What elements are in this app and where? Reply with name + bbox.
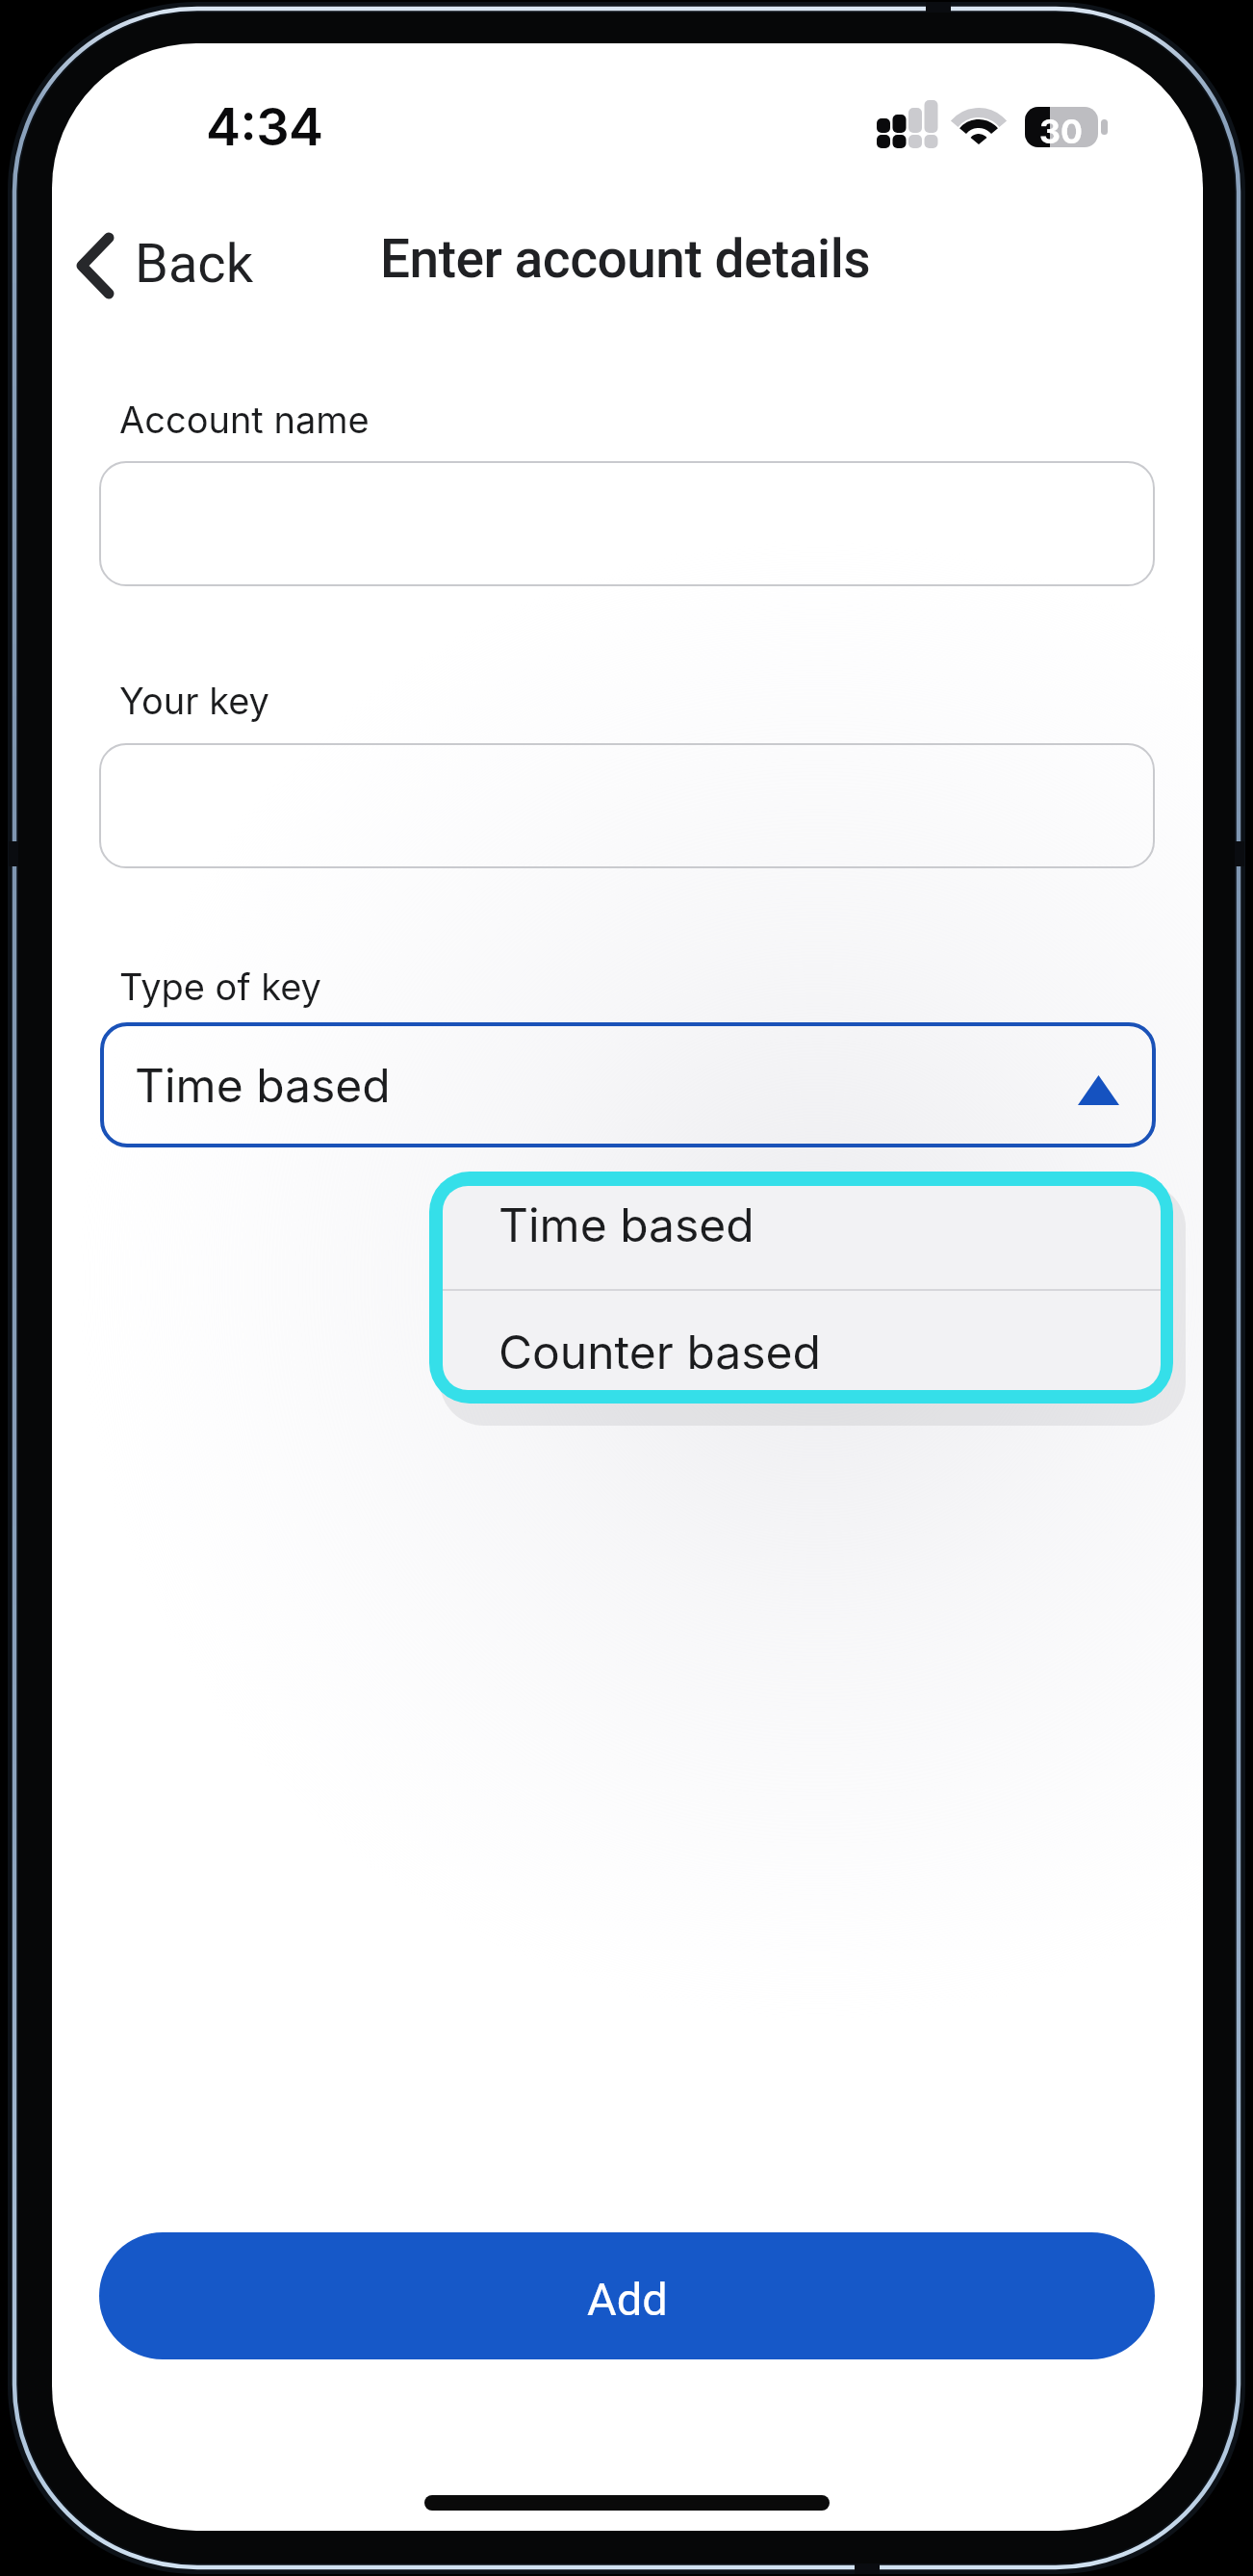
staticText: Enter account details <box>380 228 871 290</box>
staticText: 30 <box>1039 112 1083 151</box>
staticText: Counter based <box>499 1324 821 1379</box>
staticText: 4:34 <box>206 95 323 158</box>
button[interactable]: Back <box>67 212 318 347</box>
staticText: Time based <box>135 1057 391 1113</box>
staticText: Time based <box>499 1197 754 1252</box>
button[interactable]: Time based <box>100 1022 1156 1147</box>
staticText: Type of key <box>119 965 321 1009</box>
staticText: Account name <box>119 398 370 442</box>
button[interactable]: Time based <box>443 1186 1161 1289</box>
staticText: Your key <box>119 679 269 723</box>
button[interactable] <box>99 743 1155 868</box>
staticText: Add <box>587 2273 668 2326</box>
button[interactable] <box>99 461 1155 586</box>
button[interactable]: Counter based <box>443 1291 1161 1390</box>
staticText: Back <box>135 232 254 296</box>
button[interactable]: Add <box>99 2232 1155 2359</box>
